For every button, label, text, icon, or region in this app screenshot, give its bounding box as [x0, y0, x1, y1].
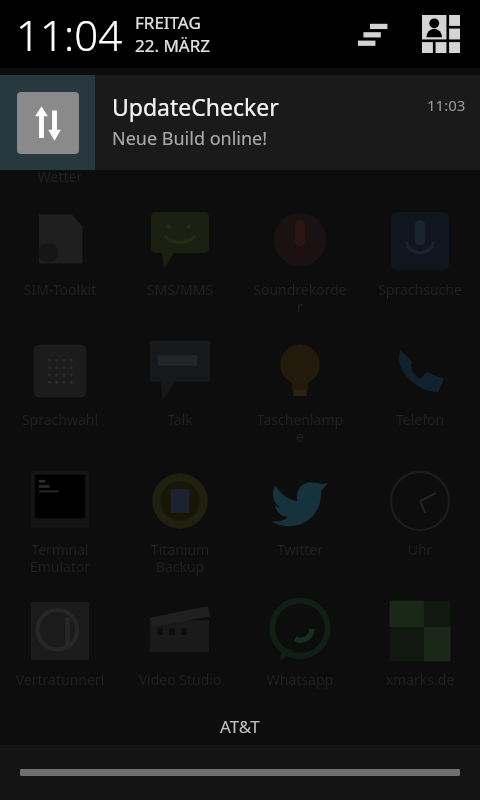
staticText: 22. MÄRZ — [135, 34, 211, 57]
staticText: Twitter — [240, 540, 360, 559]
staticText: Sprachwahl — [0, 410, 120, 429]
staticText: Whatsapp — [240, 670, 360, 689]
button[interactable]: Quick settings — [414, 7, 468, 61]
button[interactable]: Video Studio — [120, 598, 240, 689]
button[interactable]: Rechner — [240, 78, 360, 169]
button[interactable]: Close notification shade — [0, 745, 480, 800]
staticText: Vertratunnerl — [0, 670, 120, 689]
staticText: News & Wetter — [0, 150, 120, 186]
button[interactable]: Vertratunnerl — [0, 598, 120, 689]
button[interactable]: News & Wetter — [0, 78, 120, 186]
staticText: Talk — [120, 410, 240, 429]
button[interactable]: Clear all notifications — [346, 7, 400, 61]
button[interactable]: Play Store — [120, 78, 240, 169]
button[interactable]: xmarks.de — [360, 598, 480, 689]
staticText: Terminal Emulator — [0, 540, 120, 576]
button[interactable]: Terminal Emulator — [0, 468, 120, 576]
staticText: SIM-Toolkit — [0, 280, 120, 299]
staticText: Taschenlamp e — [240, 410, 360, 446]
staticText: AT&T — [220, 715, 260, 738]
button[interactable]: SIM-Toolkit — [0, 208, 120, 299]
button[interactable]: screenshot — [360, 78, 480, 169]
button[interactable]: UpdateChecker — [0, 75, 480, 170]
staticText: Sprachsuche — [360, 280, 480, 299]
button[interactable]: Sprachsuche — [360, 208, 480, 299]
staticText: FREITAG — [135, 11, 201, 34]
button[interactable]: Soundrekorde r — [240, 208, 360, 316]
button[interactable]: Twitter — [240, 468, 360, 559]
button[interactable]: Sprachwahl — [0, 338, 120, 429]
button[interactable]: Uhr — [360, 468, 480, 559]
staticText: 11:03 — [427, 95, 466, 115]
staticText: Titanium Backup — [120, 540, 240, 576]
staticText: SMS/MMS — [120, 280, 240, 299]
staticText: xmarks.de — [360, 670, 480, 689]
button[interactable]: Whatsapp — [240, 598, 360, 689]
staticText: Soundrekorde r — [240, 280, 360, 316]
button[interactable]: Talk — [120, 338, 240, 429]
button[interactable]: SMS/MMS — [120, 208, 240, 299]
staticText: UpdateChecker — [112, 91, 279, 122]
button[interactable]: Taschenlamp e — [240, 338, 360, 446]
staticText: 11:04 — [16, 6, 123, 63]
button[interactable]: Telefon — [360, 338, 480, 429]
staticText: Neue Build online! — [112, 126, 268, 151]
button[interactable]: Titanium Backup — [120, 468, 240, 576]
staticText: Telefon — [360, 410, 480, 429]
staticText: Video Studio — [120, 670, 240, 689]
